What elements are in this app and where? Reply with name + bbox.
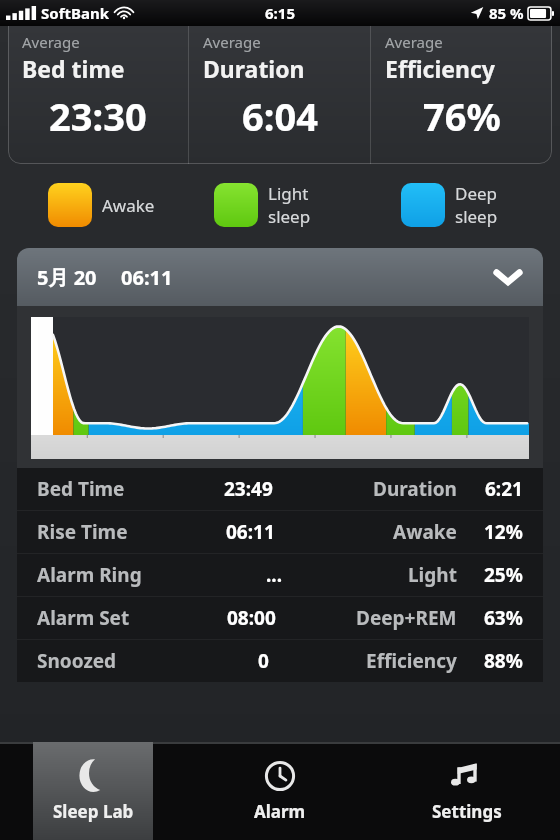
staticText: 23:49 bbox=[224, 476, 273, 502]
button[interactable]: Snoozed bbox=[17, 640, 543, 682]
staticText: Snoozed bbox=[37, 648, 117, 674]
staticText: SoftBank bbox=[41, 3, 109, 23]
staticText: Bed time bbox=[22, 53, 125, 84]
button[interactable]: Settings bbox=[407, 742, 527, 840]
staticText: ... bbox=[266, 562, 283, 588]
button[interactable]: Awake bbox=[48, 174, 186, 236]
staticText: Deep+REM bbox=[356, 605, 457, 631]
button[interactable]: Light bbox=[214, 174, 373, 236]
staticText: 76% bbox=[423, 90, 501, 142]
staticText: 06:11 bbox=[121, 264, 173, 291]
staticText: 25% bbox=[484, 562, 523, 588]
staticText: Alarm Set bbox=[37, 605, 130, 631]
staticText: sleep bbox=[268, 205, 311, 228]
staticText: Awake bbox=[393, 519, 457, 545]
staticText: Light bbox=[268, 182, 309, 205]
other: Collapse bbox=[495, 269, 521, 285]
staticText: Duration bbox=[203, 53, 305, 84]
staticText: 6:21 bbox=[485, 476, 523, 502]
staticText: Awake bbox=[102, 194, 155, 217]
button[interactable]: Bed Time bbox=[17, 468, 543, 510]
staticText: sleep bbox=[455, 205, 498, 228]
staticText: Average bbox=[203, 32, 261, 52]
staticText: Alarm bbox=[254, 800, 306, 823]
button[interactable]: Alarm bbox=[220, 742, 340, 840]
button[interactable]: 5月 20 bbox=[17, 248, 543, 306]
button[interactable]: Average bbox=[189, 26, 370, 164]
staticText: 88% bbox=[484, 648, 523, 674]
button[interactable]: Deep bbox=[401, 174, 560, 236]
button[interactable]: Average bbox=[8, 26, 188, 164]
staticText: 5月 20 bbox=[37, 264, 97, 291]
staticText: Settings bbox=[432, 800, 502, 823]
staticText: 85 % bbox=[489, 3, 524, 23]
button[interactable]: Alarm Set bbox=[17, 597, 543, 639]
staticText: Light bbox=[408, 562, 457, 588]
button[interactable]: Alarm Ring bbox=[17, 554, 543, 596]
staticText: 06:11 bbox=[226, 519, 275, 545]
staticText: 12% bbox=[484, 519, 523, 545]
staticText: 23:30 bbox=[49, 90, 147, 142]
staticText: Average bbox=[22, 32, 80, 52]
staticText: 6:04 bbox=[242, 90, 318, 142]
staticText: Average bbox=[385, 32, 443, 52]
staticText: Efficiency bbox=[385, 53, 495, 84]
staticText: Bed Time bbox=[37, 476, 125, 502]
button[interactable]: Rise Time bbox=[17, 511, 543, 553]
button[interactable]: Sleep Lab bbox=[33, 742, 153, 840]
staticText: 08:00 bbox=[227, 605, 276, 631]
button[interactable]: Average bbox=[371, 26, 552, 164]
staticText: Alarm Ring bbox=[37, 562, 142, 588]
staticText: 63% bbox=[484, 605, 523, 631]
staticText: Rise Time bbox=[37, 519, 128, 545]
staticText: Duration bbox=[373, 476, 457, 502]
staticText: Efficiency bbox=[366, 648, 457, 674]
staticText: 0 bbox=[258, 648, 269, 674]
staticText: Sleep Lab bbox=[53, 800, 134, 823]
staticText: 6:15 bbox=[265, 3, 295, 23]
staticText: Deep bbox=[455, 182, 498, 205]
